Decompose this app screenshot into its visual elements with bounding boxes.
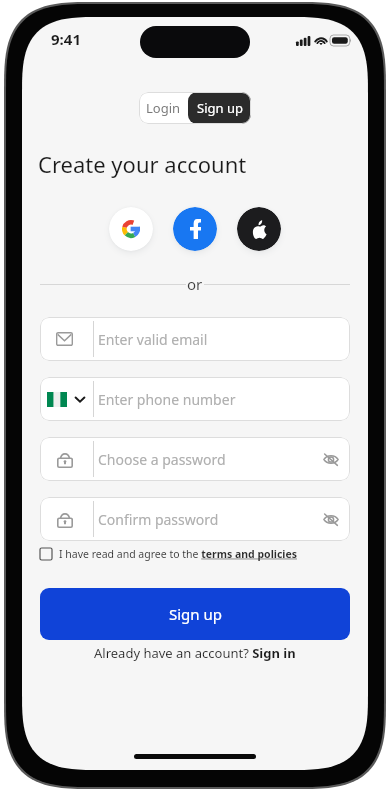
button[interactable]: Login (139, 92, 188, 124)
staticText: Login (146, 99, 181, 117)
button[interactable]: Sign up (40, 588, 350, 640)
staticText: Enter phone number (98, 390, 236, 409)
button[interactable]: Sign up with Facebook (173, 207, 217, 251)
button[interactable]: Enter phone number (40, 377, 350, 421)
staticText: Enter valid email (98, 330, 208, 349)
staticText: Confirm password (98, 510, 219, 529)
button[interactable]: Confirm password (40, 497, 350, 541)
button[interactable]: Sign up (188, 92, 251, 124)
staticText: Sign up (197, 99, 243, 117)
staticText: or (187, 274, 203, 294)
button[interactable]: Sign up with Apple (237, 207, 281, 251)
button[interactable]: Show password (319, 507, 343, 531)
button[interactable]: Choose a password (40, 437, 350, 481)
staticText: Already have an account? Sign in (94, 644, 296, 662)
staticText: 9:41 (51, 29, 81, 49)
button[interactable]: I have read and agree to the terms and p… (40, 547, 350, 561)
staticText: I have read and agree to the terms and p… (59, 547, 298, 561)
staticText: Sign up (169, 604, 222, 624)
button[interactable]: Already have an account? Sign in (94, 644, 296, 662)
staticText: Choose a password (98, 450, 226, 469)
button[interactable]: Enter valid email (40, 317, 350, 361)
staticText: Create your account (38, 149, 247, 179)
button[interactable]: Show password (319, 447, 343, 471)
button[interactable]: Sign up with Google (109, 207, 153, 251)
